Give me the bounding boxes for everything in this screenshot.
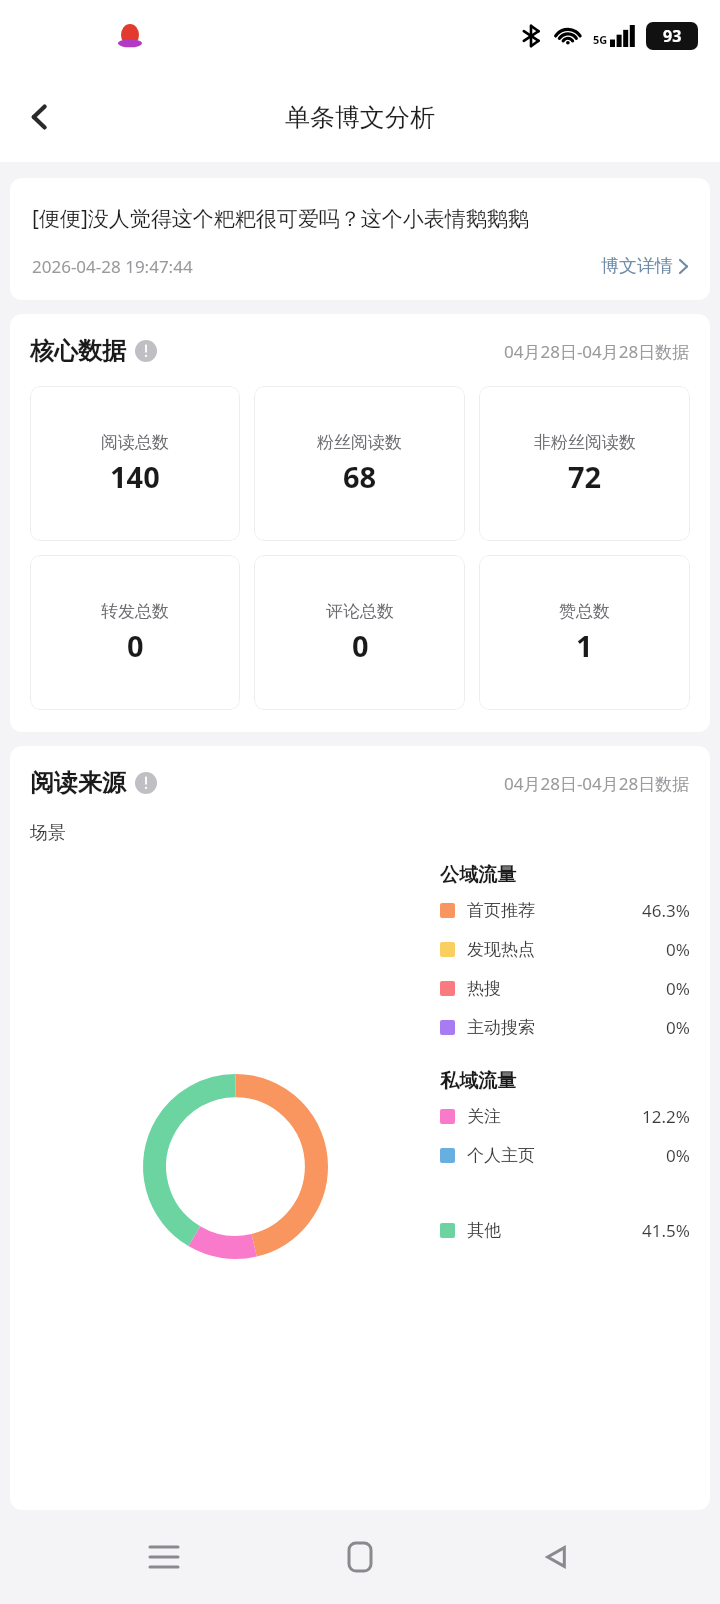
button[interactable]: 主动搜索 xyxy=(440,1008,690,1047)
staticText: 0% xyxy=(666,1016,690,1039)
staticText: 93 xyxy=(663,25,682,47)
staticText: 04月28日-04月28日数据 xyxy=(504,772,690,795)
staticText: 0% xyxy=(666,1144,690,1167)
staticText: 评论总数 xyxy=(326,601,394,622)
button[interactable]: 粉丝阅读数 xyxy=(254,386,465,541)
button[interactable]: Recents xyxy=(132,1525,196,1589)
staticText: 粉丝阅读数 xyxy=(317,432,402,453)
staticText: 68 xyxy=(343,457,377,496)
button[interactable]: 其他 xyxy=(440,1211,690,1250)
button[interactable]: 首页推荐 xyxy=(440,891,690,930)
staticText: 公域流量 xyxy=(440,863,516,887)
button[interactable]: Home xyxy=(328,1525,392,1589)
staticText: 核心数据 xyxy=(30,336,126,366)
staticText: 04月28日-04月28日数据 xyxy=(504,340,690,363)
staticText: 12.2% xyxy=(642,1105,690,1128)
button[interactable]: 转发总数 xyxy=(30,555,240,710)
button[interactable]: Back xyxy=(10,87,70,147)
button[interactable]: Back xyxy=(524,1525,588,1589)
button[interactable]: Info xyxy=(135,772,157,794)
staticText: 46.3% xyxy=(642,899,690,922)
button[interactable]: 关注 xyxy=(440,1097,690,1136)
button[interactable]: 非粉丝阅读数 xyxy=(479,386,690,541)
button[interactable]: 热搜 xyxy=(440,969,690,1008)
staticText: 转发总数 xyxy=(101,601,169,622)
staticText: 0% xyxy=(666,977,690,1000)
staticText: 单条博文分析 xyxy=(285,102,435,133)
staticText: 2026-04-28 19:47:44 xyxy=(32,255,193,278)
staticText: 140 xyxy=(110,457,160,496)
staticText: 主动搜索 xyxy=(467,1017,535,1038)
staticText: 0 xyxy=(352,626,369,665)
staticText: 5G xyxy=(593,32,608,47)
staticText: 其他 xyxy=(467,1220,501,1241)
staticText: 热搜 xyxy=(467,978,501,999)
staticText: 阅读来源 xyxy=(30,768,126,798)
staticText: 72 xyxy=(568,457,602,496)
staticText: 博文详情 xyxy=(601,255,673,278)
button[interactable]: Info xyxy=(135,340,157,362)
staticText: 非粉丝阅读数 xyxy=(534,432,636,453)
button[interactable]: 评论总数 xyxy=(254,555,465,710)
button[interactable]: 个人主页 xyxy=(440,1136,690,1175)
staticText: 场景 xyxy=(30,822,66,845)
staticText: 41.5% xyxy=(642,1219,690,1242)
button[interactable]: 赞总数 xyxy=(479,555,690,710)
staticText: 个人主页 xyxy=(467,1145,535,1166)
staticText: 关注 xyxy=(467,1106,501,1127)
button[interactable]: 阅读总数 xyxy=(30,386,240,541)
button[interactable]: [便便]没人觉得这个粑粑很可爱吗？这个小表情鹅鹅鹅 xyxy=(10,178,710,300)
staticText: 0% xyxy=(666,938,690,961)
staticText: 首页推荐 xyxy=(467,900,535,921)
staticText: 赞总数 xyxy=(559,601,610,622)
button[interactable]: 发现热点 xyxy=(440,930,690,969)
staticText: [便便]没人觉得这个粑粑很可爱吗？这个小表情鹅鹅鹅 xyxy=(32,204,688,233)
staticText: 0 xyxy=(127,626,144,665)
staticText: 阅读总数 xyxy=(101,432,169,453)
button[interactable]: 博文详情 xyxy=(601,255,688,278)
staticText: 私域流量 xyxy=(440,1069,516,1093)
staticText: 发现热点 xyxy=(467,939,535,960)
staticText: 1 xyxy=(576,626,593,665)
